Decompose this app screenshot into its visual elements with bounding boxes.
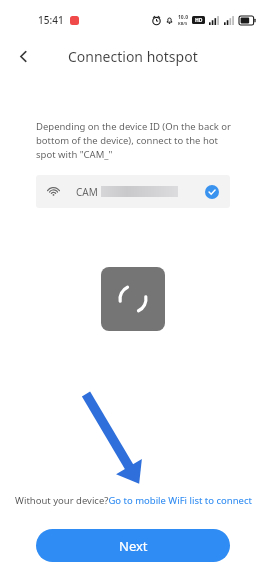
staticText: Connection hotspot	[68, 47, 198, 66]
staticText: KB/S	[178, 21, 188, 26]
staticText: Depending on the device ID (On the back …	[36, 120, 236, 161]
button[interactable]: Back	[8, 41, 38, 71]
staticText: Without your device?Go to mobile WiFi li…	[15, 494, 252, 507]
staticText: HD	[195, 17, 203, 24]
staticText: 10.0	[178, 14, 188, 21]
staticText: 15:41	[38, 13, 64, 27]
button[interactable]: Without your device?Go to mobile WiFi li…	[0, 494, 266, 507]
button[interactable]: CAM	[36, 175, 230, 208]
button[interactable]: Next	[36, 529, 230, 562]
staticText: Next	[119, 537, 148, 555]
staticText: CAM	[76, 185, 98, 199]
